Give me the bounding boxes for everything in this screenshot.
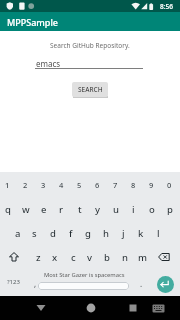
button[interactable] bbox=[157, 276, 174, 293]
button[interactable]: z bbox=[30, 250, 46, 264]
button[interactable]: v bbox=[82, 250, 98, 264]
staticText: s bbox=[32, 227, 37, 240]
staticText: h bbox=[103, 227, 109, 240]
staticText: v bbox=[87, 251, 93, 264]
button[interactable]: d bbox=[44, 226, 61, 240]
staticText: 6 bbox=[95, 180, 100, 190]
button[interactable]: c bbox=[65, 250, 81, 264]
button[interactable]: 3 bbox=[35, 178, 52, 192]
staticText: MPPSample bbox=[7, 16, 59, 28]
staticText: e bbox=[41, 203, 47, 216]
button[interactable] bbox=[156, 250, 174, 264]
staticText: emacs bbox=[36, 58, 61, 69]
button[interactable]: 8 bbox=[125, 178, 142, 192]
button[interactable] bbox=[123, 298, 143, 318]
button[interactable]: y bbox=[89, 202, 106, 216]
button[interactable]: f bbox=[62, 226, 79, 240]
button[interactable]: l bbox=[150, 226, 167, 240]
button[interactable]: w bbox=[17, 202, 34, 216]
staticText: t bbox=[78, 203, 82, 216]
staticText: 1 bbox=[5, 180, 10, 190]
staticText: 7 bbox=[113, 180, 118, 190]
staticText: b bbox=[104, 251, 110, 264]
staticText: y bbox=[95, 203, 101, 216]
staticText: j bbox=[122, 227, 125, 240]
staticText: 8:56 bbox=[160, 2, 173, 11]
staticText: 8 bbox=[131, 180, 136, 190]
button[interactable] bbox=[31, 298, 51, 318]
staticText: l bbox=[157, 227, 160, 240]
button[interactable]: 9 bbox=[143, 178, 160, 192]
staticText: m bbox=[138, 251, 147, 264]
button[interactable]: i bbox=[125, 202, 142, 216]
staticText: p bbox=[167, 203, 173, 216]
staticText: 4 bbox=[59, 180, 64, 190]
button[interactable]: 0 bbox=[161, 178, 178, 192]
button[interactable]: u bbox=[107, 202, 124, 216]
staticText: n bbox=[122, 251, 128, 264]
staticText: q bbox=[5, 203, 11, 216]
button[interactable]: j bbox=[115, 226, 132, 240]
button[interactable] bbox=[150, 299, 167, 317]
button[interactable]: emacs bbox=[35, 56, 143, 71]
staticText: 5 bbox=[77, 180, 82, 190]
staticText: 2 bbox=[23, 180, 28, 190]
staticText: g bbox=[85, 227, 91, 240]
button[interactable]: a bbox=[9, 226, 26, 240]
button[interactable]: 4 bbox=[53, 178, 70, 192]
button[interactable]: , bbox=[30, 276, 40, 290]
button[interactable]: e bbox=[35, 202, 52, 216]
staticText: 0 bbox=[167, 180, 172, 190]
staticText: o bbox=[149, 203, 155, 216]
button[interactable]: o bbox=[143, 202, 160, 216]
staticText: a bbox=[15, 227, 21, 240]
staticText: SEARCH bbox=[78, 85, 103, 94]
staticText: 9 bbox=[149, 180, 154, 190]
button[interactable] bbox=[38, 282, 129, 290]
staticText: c bbox=[71, 251, 76, 264]
staticText: k bbox=[138, 227, 144, 240]
button[interactable]: 2 bbox=[17, 178, 34, 192]
button[interactable]: b bbox=[99, 250, 115, 264]
button[interactable]: q bbox=[0, 202, 16, 216]
button[interactable]: p bbox=[161, 202, 178, 216]
button[interactable]: s bbox=[26, 226, 43, 240]
staticText: z bbox=[36, 251, 41, 264]
button[interactable]: 7 bbox=[107, 178, 124, 192]
button[interactable]: 5 bbox=[71, 178, 88, 192]
button[interactable]: k bbox=[132, 226, 149, 240]
staticText: r bbox=[59, 203, 64, 216]
staticText: Search GitHub Repository. bbox=[50, 41, 130, 50]
button[interactable]: SEARCH bbox=[72, 82, 108, 97]
button[interactable]: g bbox=[79, 226, 96, 240]
button[interactable]: 6 bbox=[89, 178, 106, 192]
staticText: i bbox=[132, 203, 135, 216]
button[interactable]: . bbox=[136, 276, 146, 290]
staticText: , bbox=[34, 278, 37, 289]
staticText: w bbox=[22, 203, 30, 216]
button[interactable]: r bbox=[53, 202, 70, 216]
button[interactable] bbox=[6, 250, 22, 264]
button[interactable]: 1 bbox=[0, 178, 16, 192]
button[interactable] bbox=[81, 298, 101, 318]
staticText: x bbox=[52, 251, 58, 264]
staticText: . bbox=[140, 278, 143, 289]
button[interactable]: t bbox=[71, 202, 88, 216]
staticText: u bbox=[113, 203, 119, 216]
staticText: d bbox=[50, 227, 56, 240]
button[interactable]: h bbox=[97, 226, 114, 240]
button[interactable]: n bbox=[117, 250, 133, 264]
staticText: ?123 bbox=[7, 278, 20, 286]
button[interactable]: x bbox=[47, 250, 63, 264]
button[interactable]: ?123 bbox=[3, 275, 23, 289]
staticText: 3 bbox=[41, 180, 46, 190]
staticText: Most Star Gazer is spacemacs bbox=[44, 271, 125, 279]
staticText: f bbox=[69, 227, 73, 240]
button[interactable]: m bbox=[134, 250, 150, 264]
